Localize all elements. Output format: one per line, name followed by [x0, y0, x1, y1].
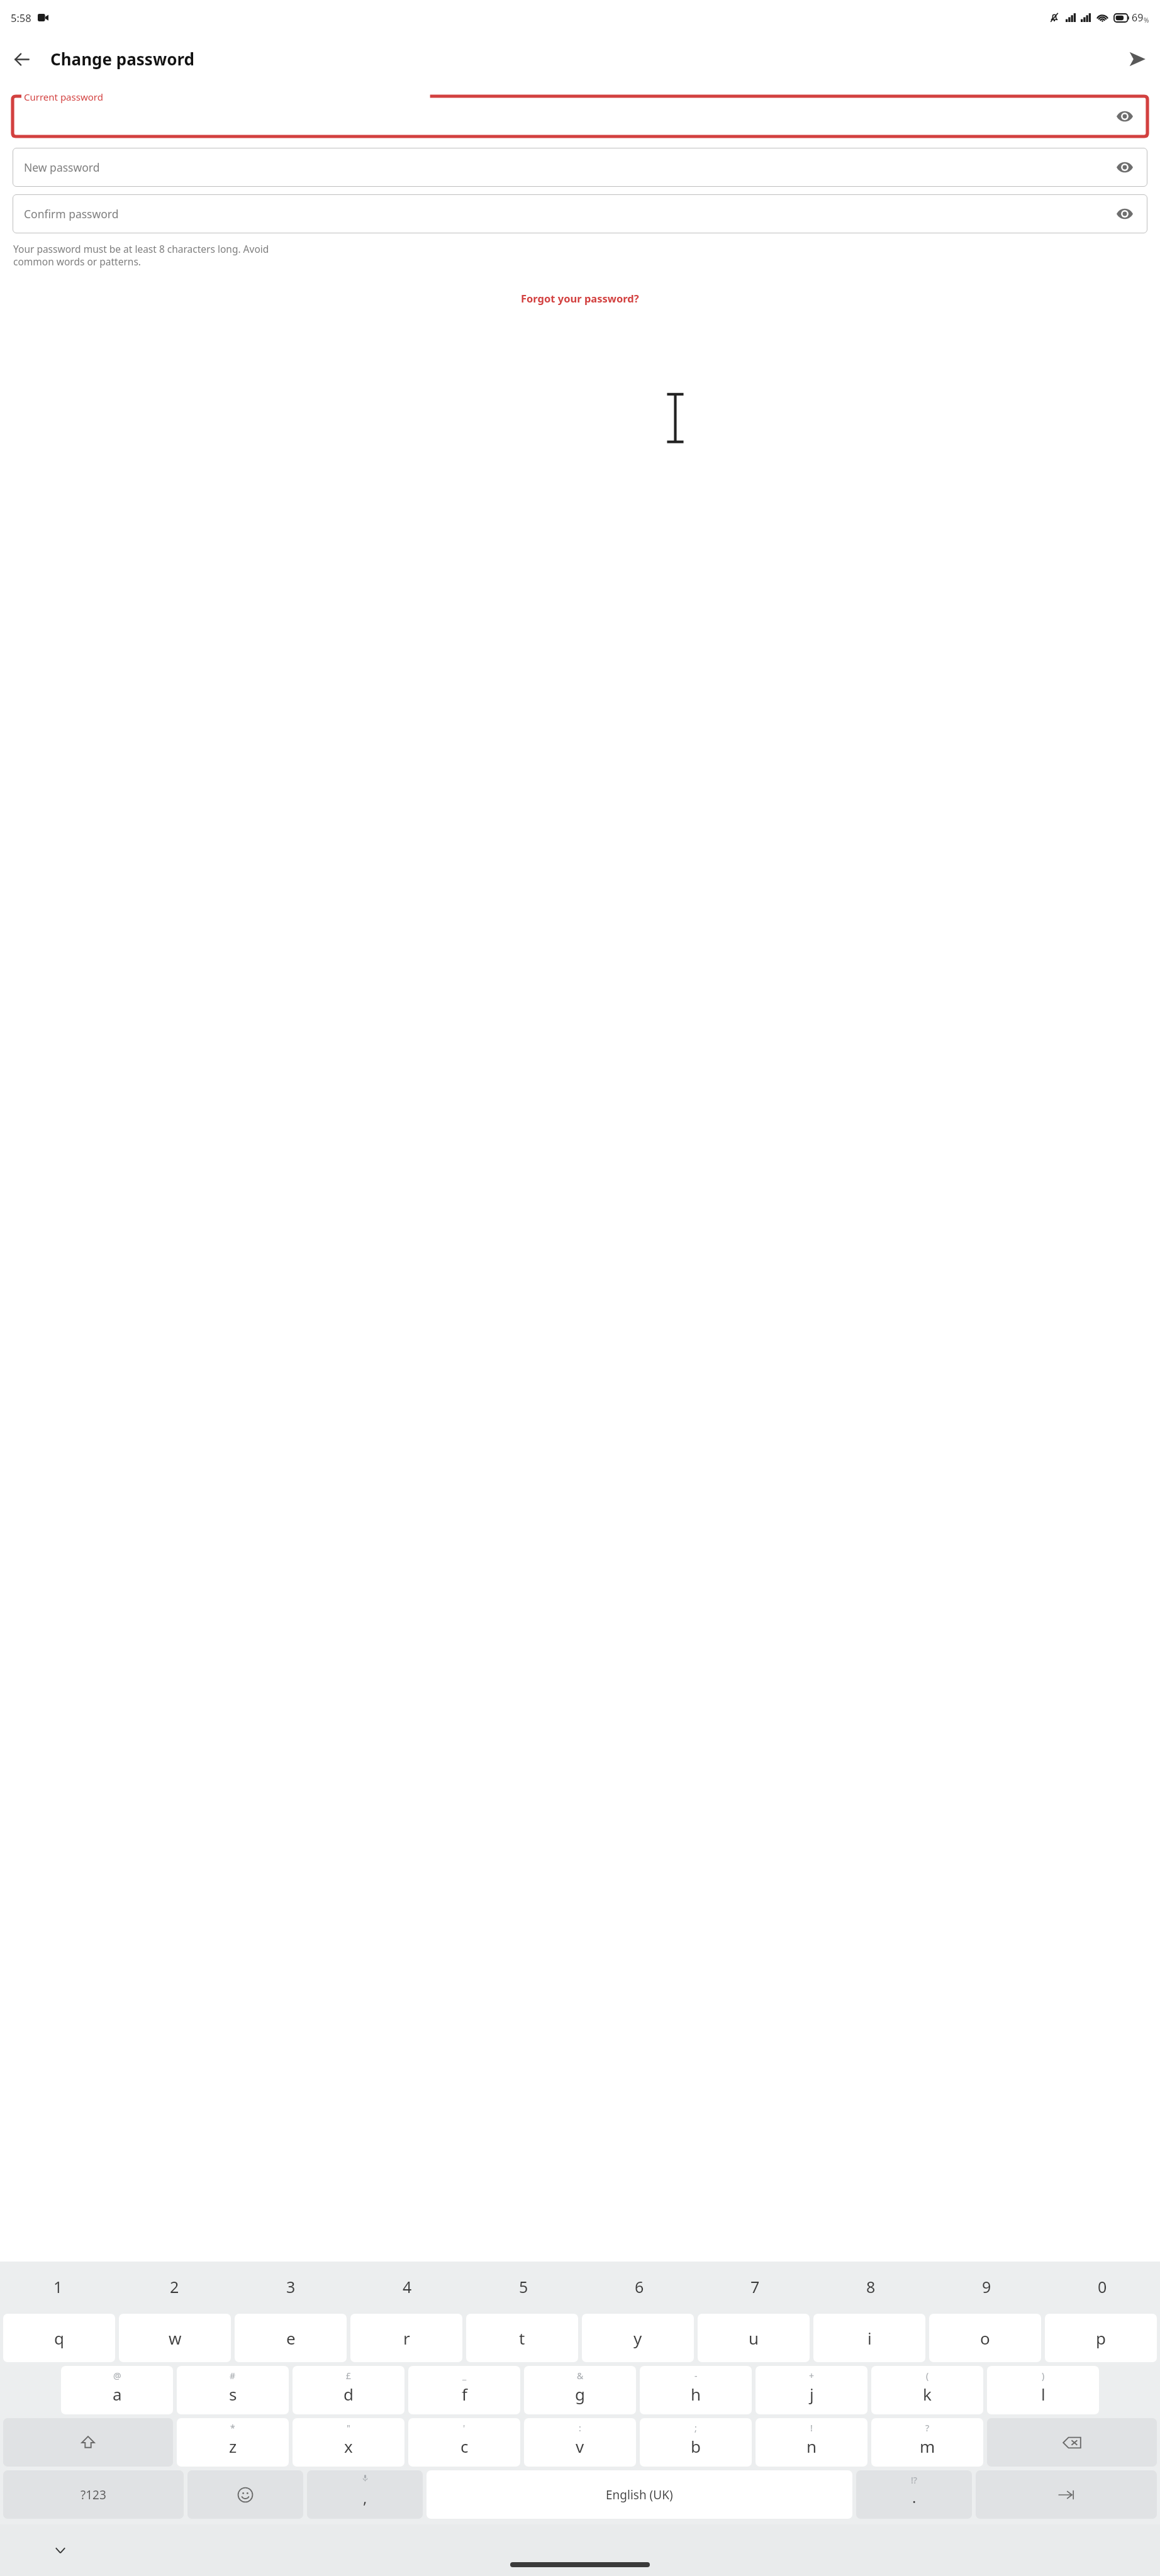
button[interactable]: t	[466, 2314, 578, 2362]
button[interactable]: 3	[233, 2262, 349, 2312]
staticText: 4	[403, 2276, 412, 2297]
staticText: v	[576, 2435, 584, 2457]
staticText: *	[230, 2422, 235, 2434]
staticText: k	[923, 2383, 932, 2405]
button[interactable]: "	[293, 2418, 404, 2467]
staticText: -	[694, 2370, 698, 2382]
button[interactable]: ;	[640, 2418, 752, 2467]
button[interactable]: -	[640, 2366, 752, 2414]
button[interactable]: New password	[13, 148, 1147, 187]
staticText: p	[1096, 2327, 1106, 2349]
staticText: +	[809, 2370, 815, 2382]
staticText: z	[229, 2435, 237, 2457]
staticText: 9	[982, 2276, 991, 2297]
button[interactable]: Backspace	[987, 2418, 1157, 2467]
staticText: l	[1041, 2383, 1046, 2405]
staticText: y	[633, 2327, 642, 2349]
button[interactable]: w	[119, 2314, 231, 2362]
staticText: New password	[24, 160, 100, 175]
button[interactable]: y	[582, 2314, 694, 2362]
button[interactable]: English (UK)	[427, 2470, 852, 2519]
staticText: e	[286, 2327, 296, 2349]
button[interactable]: 4	[349, 2262, 466, 2312]
staticText: a	[113, 2383, 122, 2405]
button[interactable]: 1	[0, 2262, 116, 2312]
staticText: !	[810, 2422, 813, 2434]
staticText: Forgot your password?	[521, 291, 639, 305]
staticText: o	[980, 2327, 990, 2349]
button[interactable]: ?123	[3, 2470, 184, 2519]
button[interactable]: Emoji	[187, 2470, 303, 2519]
staticText: :	[579, 2422, 581, 2434]
button[interactable]: u	[698, 2314, 810, 2362]
button[interactable]: e	[235, 2314, 347, 2362]
staticText: &	[577, 2370, 584, 2382]
staticText: 5	[519, 2276, 528, 2297]
staticText: w	[169, 2327, 182, 2349]
button[interactable]: 8	[813, 2262, 929, 2312]
button[interactable]: i	[813, 2314, 925, 2362]
staticText: 69	[1132, 11, 1144, 25]
button[interactable]: £	[293, 2366, 404, 2414]
button[interactable]: 9	[929, 2262, 1044, 2312]
button[interactable]: Forgot your password?	[513, 287, 647, 309]
button[interactable]: +	[756, 2366, 867, 2414]
button[interactable]: ?	[871, 2418, 983, 2467]
button[interactable]: Next	[976, 2470, 1157, 2519]
staticText: (	[926, 2370, 929, 2382]
button[interactable]: ,	[307, 2470, 423, 2519]
button[interactable]: Show password	[1111, 200, 1139, 228]
button[interactable]: o	[929, 2314, 1041, 2362]
button[interactable]: (	[871, 2366, 983, 2414]
staticText: r	[403, 2327, 410, 2349]
button[interactable]: Confirm password	[13, 194, 1147, 233]
staticText: £	[346, 2370, 352, 2382]
button[interactable]: q	[3, 2314, 115, 2362]
button[interactable]: Show password	[1111, 103, 1139, 130]
button[interactable]: _	[408, 2366, 520, 2414]
staticText: @	[113, 2370, 121, 2382]
staticText: #	[230, 2370, 236, 2382]
staticText: Change password	[50, 48, 194, 70]
button[interactable]: .	[856, 2470, 972, 2519]
staticText: u	[749, 2327, 759, 2349]
staticText: "	[347, 2422, 350, 2434]
staticText: Your password must be at least 8 charact…	[13, 242, 269, 269]
staticText: _	[462, 2370, 467, 2382]
button[interactable]: 6	[581, 2262, 697, 2312]
button[interactable]: Show password	[1111, 153, 1139, 181]
staticText: b	[691, 2435, 701, 2457]
button[interactable]: :	[524, 2418, 636, 2467]
button[interactable]: )	[987, 2366, 1099, 2414]
button[interactable]: 0	[1044, 2262, 1160, 2312]
button[interactable]: r	[350, 2314, 462, 2362]
staticText: %	[1144, 16, 1149, 25]
staticText: d	[343, 2383, 354, 2405]
button[interactable]: Back	[4, 42, 39, 77]
button[interactable]: 2	[116, 2262, 233, 2312]
button[interactable]: Send	[1120, 42, 1155, 77]
button[interactable]: !	[756, 2418, 867, 2467]
button[interactable]: Hide keyboard	[45, 2535, 75, 2565]
button[interactable]: 5	[466, 2262, 581, 2312]
button[interactable]: @	[61, 2366, 173, 2414]
button[interactable]: #	[177, 2366, 289, 2414]
button[interactable]: 7	[697, 2262, 813, 2312]
staticText: )	[1042, 2370, 1045, 2382]
staticText: ,	[363, 2487, 367, 2508]
staticText: Current password	[24, 91, 103, 103]
button[interactable]: '	[408, 2418, 520, 2467]
staticText: 2	[170, 2276, 179, 2297]
staticText: 1	[53, 2276, 63, 2297]
staticText: 7	[750, 2276, 760, 2297]
button[interactable]: Shift	[3, 2418, 173, 2467]
staticText: x	[344, 2435, 353, 2457]
button[interactable]: *	[177, 2418, 289, 2467]
staticText: g	[575, 2383, 585, 2405]
staticText: 8	[866, 2276, 876, 2297]
staticText: 5:58	[11, 11, 31, 25]
staticText: .	[912, 2487, 917, 2507]
button[interactable]: p	[1045, 2314, 1157, 2362]
staticText: c	[460, 2435, 469, 2457]
button[interactable]: &	[524, 2366, 636, 2414]
